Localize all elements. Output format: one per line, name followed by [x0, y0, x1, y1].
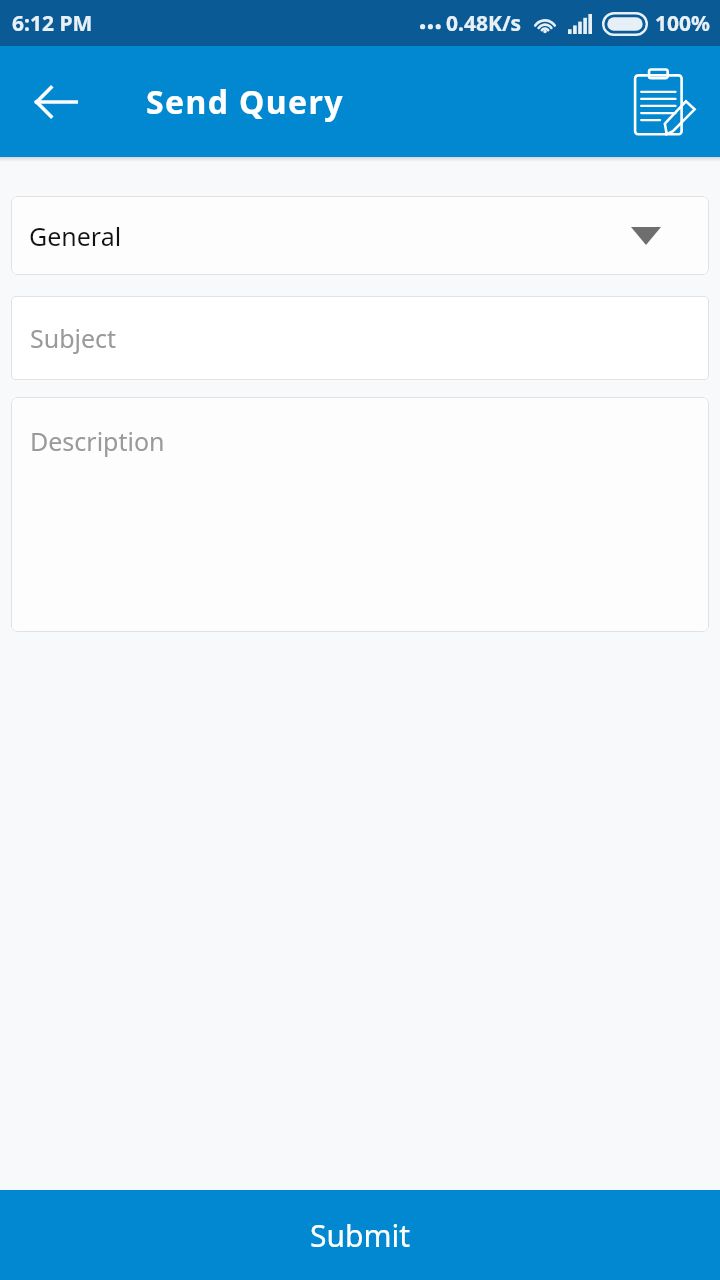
button[interactable]: General	[11, 196, 709, 275]
staticText: Description	[30, 424, 165, 458]
staticText: 0.48K/s	[446, 9, 522, 38]
staticText: Submit	[310, 1215, 411, 1256]
staticText: 100%	[655, 9, 710, 38]
button[interactable]: Description	[11, 397, 709, 632]
button[interactable]: Query list	[622, 61, 704, 143]
button[interactable]: Back	[22, 68, 90, 136]
staticText: Subject	[30, 321, 117, 355]
button[interactable]: Submit	[0, 1190, 720, 1280]
staticText: Send Query	[146, 80, 344, 124]
staticText: General	[29, 219, 122, 253]
staticText: 6:12 PM	[12, 9, 93, 38]
button[interactable]: Subject	[11, 296, 709, 380]
